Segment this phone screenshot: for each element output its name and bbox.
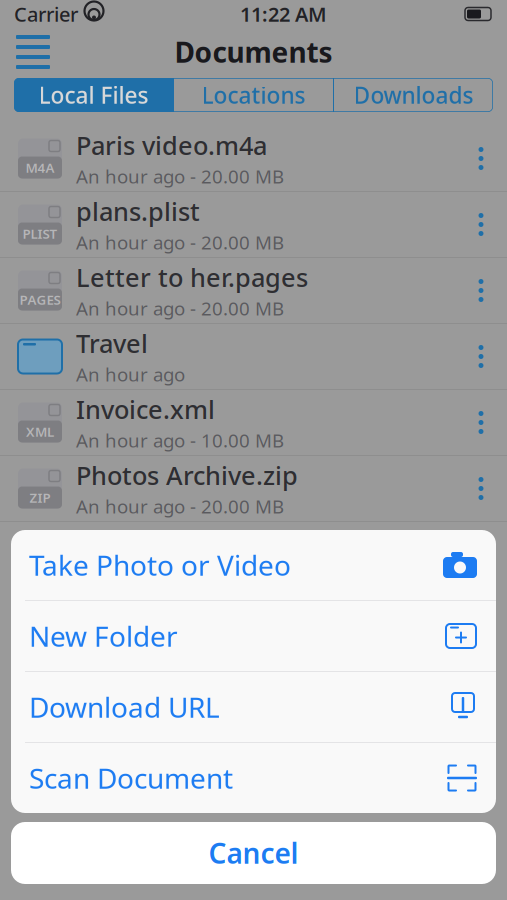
staticText: An hour ago [76,362,185,387]
button[interactable]: M4A [0,126,507,192]
staticText: Invoice.xml [76,392,215,426]
button[interactable]: Downloads [334,78,493,112]
staticText: XML [26,423,54,440]
staticText: Download URL [29,688,220,726]
staticText: An hour ago - 20.00 MB [76,494,284,519]
staticText: Take Photo or Video [29,546,291,584]
staticText: Carrier [14,1,78,27]
button[interactable]: PAGES [0,258,507,324]
button[interactable]: Cancel [11,822,496,884]
staticText: Travel [76,326,148,360]
staticText: Cancel [208,834,298,872]
button[interactable]: ZIP [0,456,507,522]
button[interactable]: Local Files [14,78,173,112]
staticText: plans.plist [76,194,200,228]
button[interactable]: New Folder [11,601,496,672]
button[interactable]: Travel [0,324,507,390]
staticText: Local Files [38,80,148,110]
staticText: ZIP [29,489,50,506]
staticText: New Folder [29,617,178,655]
button[interactable]: Scan Document [11,743,496,813]
staticText: PAGES [19,291,60,308]
staticText: An hour ago - 10.00 MB [76,428,284,453]
staticText: Paris video.m4a [76,128,267,162]
staticText: An hour ago - 20.00 MB [76,296,284,321]
staticText: Scan Document [29,759,233,797]
staticText: Letter to her.pages [76,260,308,294]
staticText: An hour ago - 20.00 MB [76,230,284,255]
staticText: 11:22 AM [240,1,327,27]
staticText: Downloads [353,80,473,110]
button[interactable]: Menu [6,29,60,75]
staticText: Photos Archive.zip [76,458,298,492]
staticText: M4A [25,159,54,176]
button[interactable]: Download URL [11,672,496,743]
button[interactable]: Take Photo or Video [11,530,496,601]
button[interactable]: Locations [174,78,333,112]
staticText: PLIST [22,225,57,242]
staticText: An hour ago - 20.00 MB [76,164,284,189]
staticText: Locations [201,80,305,110]
button[interactable]: PLIST [0,192,507,258]
button[interactable]: XML [0,390,507,456]
staticText: Documents [174,33,332,71]
